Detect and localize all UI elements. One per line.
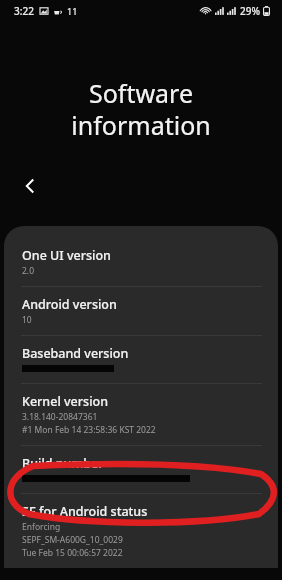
staticText: 11 [67,5,78,17]
staticText: 3.18.140-20847361 [22,411,98,423]
staticText: 3:22 [14,4,34,18]
button[interactable]: SE for Android status [4,494,278,568]
staticText: Baseband version [22,345,129,362]
staticText: 10 [22,314,32,326]
button[interactable]: Baseband version [4,336,278,383]
staticText: Kernel version [22,393,108,410]
staticText: 2.0 [22,265,35,277]
staticText: One UI version [22,247,111,264]
staticText: 29% [240,4,260,18]
staticText: Enforcing [22,521,61,533]
staticText: Tue Feb 15 00:06:57 2022 [22,547,123,559]
button[interactable]: Build number [4,446,278,493]
staticText: #1 Mon Feb 14 23:58:36 KST 2022 [22,424,156,436]
staticText: Build number [22,455,104,472]
button[interactable]: Android version [4,287,278,335]
button[interactable]: One UI version [4,238,278,286]
button[interactable]: Kernel version [4,384,278,445]
button[interactable]: Back [10,166,50,206]
staticText: Software information [0,76,282,142]
staticText: SE for Android status [22,503,148,520]
staticText: SEPF_SM-A600G_10_0029 [22,534,123,546]
staticText: Android version [22,296,117,313]
